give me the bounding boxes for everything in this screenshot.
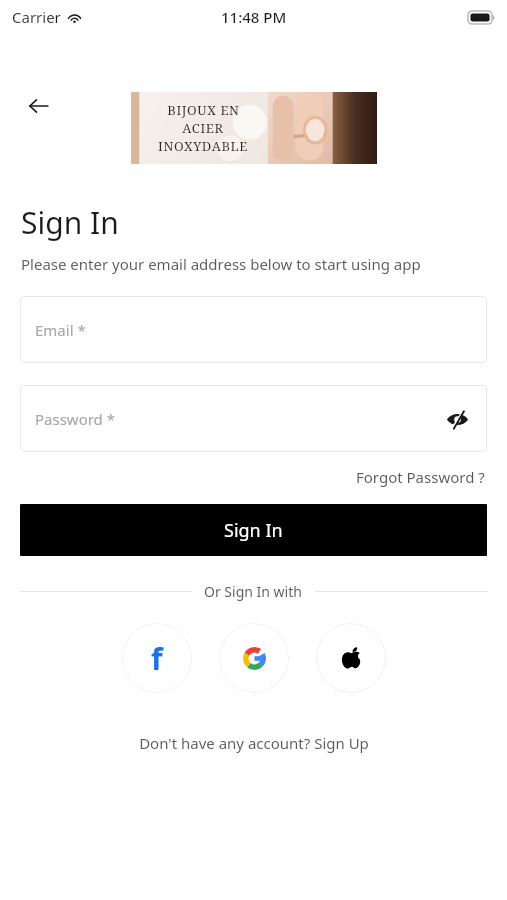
- button[interactable]: Sign in with Google: [219, 623, 289, 693]
- staticText: Don't have any account? Sign Up: [139, 733, 369, 753]
- button[interactable]: Sign in with Facebook: [122, 623, 192, 693]
- button[interactable]: Email *: [20, 296, 487, 363]
- staticText: f: [151, 638, 163, 679]
- staticText: Password *: [35, 409, 442, 429]
- staticText: Carrier: [12, 7, 61, 27]
- staticText: BIJOUX EN: [167, 101, 240, 119]
- button[interactable]: Sign In: [20, 504, 487, 556]
- staticText: INOXYDABLE: [158, 137, 248, 155]
- button[interactable]: Don't have any account? Sign Up: [135, 730, 373, 756]
- staticText: ACIER: [182, 119, 224, 137]
- staticText: Please enter your email address below to…: [21, 254, 421, 274]
- staticText: Email *: [35, 320, 472, 340]
- staticText: Sign In: [21, 202, 119, 243]
- button[interactable]: Password *: [20, 385, 487, 452]
- staticText: Forgot Password ?: [356, 467, 485, 487]
- button[interactable]: Back: [18, 86, 58, 126]
- button[interactable]: Forgot Password ?: [354, 464, 487, 490]
- button[interactable]: Show password: [442, 404, 472, 434]
- staticText: Sign In: [224, 518, 283, 543]
- button[interactable]: Sign in with Apple: [316, 623, 386, 693]
- staticText: 11:48 PM: [221, 7, 287, 27]
- staticText: Or Sign In with: [204, 582, 302, 601]
